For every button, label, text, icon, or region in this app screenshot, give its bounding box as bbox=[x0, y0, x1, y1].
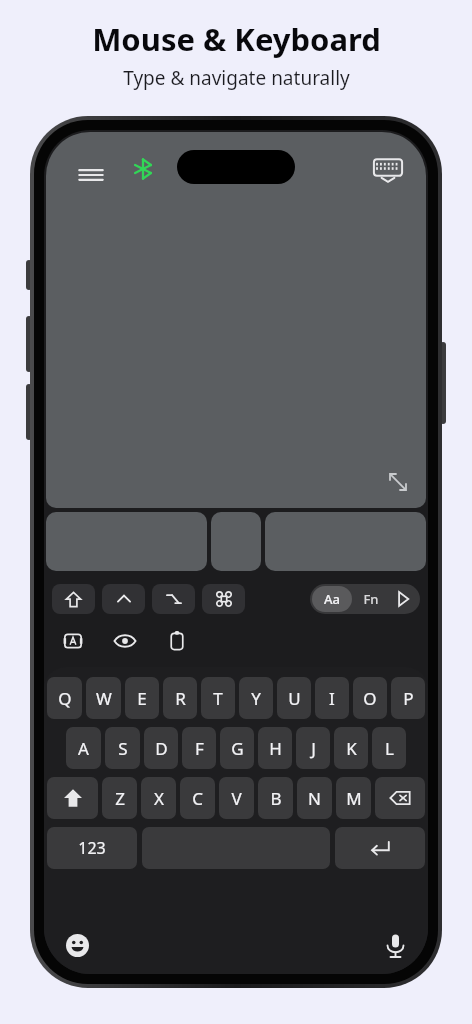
staticText: C bbox=[192, 787, 203, 810]
staticText: J bbox=[311, 737, 316, 760]
button[interactable]: Backspace bbox=[375, 777, 425, 819]
staticText: U bbox=[288, 687, 301, 710]
button[interactable]: Emoji bbox=[60, 928, 94, 962]
button[interactable] bbox=[152, 584, 195, 614]
staticText: F bbox=[195, 737, 204, 760]
staticText: K bbox=[346, 737, 357, 760]
staticText: Mouse & Keyboard bbox=[92, 18, 381, 60]
button[interactable]: V bbox=[219, 777, 254, 819]
staticText: R bbox=[175, 687, 186, 710]
button[interactable]: Aa bbox=[312, 586, 352, 612]
staticText: Q bbox=[58, 687, 72, 710]
button[interactable]: U bbox=[277, 677, 311, 719]
button[interactable]: Clipboard bbox=[162, 627, 192, 655]
staticText: Aa bbox=[324, 590, 340, 608]
button[interactable]: D bbox=[144, 727, 178, 769]
button[interactable]: More bbox=[388, 586, 418, 612]
staticText: I bbox=[329, 687, 335, 710]
button[interactable]: Hide keyboard bbox=[372, 156, 404, 188]
staticText: Type & navigate naturally bbox=[123, 65, 350, 91]
staticText: M bbox=[346, 787, 362, 810]
button[interactable]: Y bbox=[239, 677, 273, 719]
staticText: D bbox=[155, 737, 168, 760]
button[interactable]: T bbox=[201, 677, 235, 719]
button[interactable]: B bbox=[258, 777, 293, 819]
staticText: A bbox=[78, 737, 89, 760]
button[interactable]: G bbox=[220, 727, 254, 769]
button[interactable]: Return bbox=[335, 827, 425, 869]
button[interactable]: M bbox=[336, 777, 371, 819]
button[interactable]: C bbox=[180, 777, 215, 819]
staticText: 123 bbox=[78, 837, 106, 859]
button[interactable]: Q bbox=[47, 677, 82, 719]
button[interactable]: N bbox=[297, 777, 332, 819]
staticText: T bbox=[213, 687, 223, 710]
button[interactable] bbox=[202, 584, 245, 614]
button[interactable]: W bbox=[86, 677, 121, 719]
staticText: O bbox=[363, 687, 377, 710]
button[interactable]: Right click bbox=[265, 512, 426, 571]
button[interactable]: Select text bbox=[58, 627, 88, 655]
button[interactable]: E bbox=[125, 677, 159, 719]
button[interactable]: O bbox=[353, 677, 387, 719]
button[interactable]: P bbox=[391, 677, 425, 719]
staticText: Y bbox=[251, 687, 261, 710]
staticText: N bbox=[308, 787, 321, 810]
staticText: V bbox=[231, 787, 242, 810]
staticText: E bbox=[137, 687, 147, 710]
button[interactable]: R bbox=[163, 677, 197, 719]
button[interactable] bbox=[102, 584, 145, 614]
button[interactable]: X bbox=[141, 777, 176, 819]
button[interactable]: Dictate bbox=[378, 928, 412, 962]
staticText: P bbox=[403, 687, 414, 710]
button[interactable]: Z bbox=[102, 777, 137, 819]
staticText: H bbox=[269, 737, 282, 760]
staticText: L bbox=[385, 737, 394, 760]
button[interactable] bbox=[52, 584, 95, 614]
button[interactable]: Middle click bbox=[211, 512, 261, 571]
button[interactable]: Menu bbox=[76, 160, 106, 190]
staticText: S bbox=[118, 737, 128, 760]
staticText: Fn bbox=[363, 590, 379, 608]
button[interactable]: 123 bbox=[47, 827, 137, 869]
button[interactable]: Left click bbox=[46, 512, 207, 571]
button[interactable]: I bbox=[315, 677, 349, 719]
button[interactable]: F bbox=[182, 727, 216, 769]
button[interactable]: J bbox=[296, 727, 330, 769]
button[interactable]: Menu bbox=[46, 132, 426, 508]
button[interactable]: S bbox=[105, 727, 140, 769]
button[interactable]: Fn bbox=[354, 586, 388, 612]
button[interactable]: A bbox=[66, 727, 101, 769]
button[interactable]: Preview bbox=[110, 627, 140, 655]
staticText: G bbox=[231, 737, 244, 760]
button[interactable]: Shift bbox=[47, 777, 98, 819]
button[interactable]: L bbox=[372, 727, 406, 769]
staticText: B bbox=[270, 787, 282, 810]
button[interactable]: H bbox=[258, 727, 292, 769]
button[interactable]: K bbox=[334, 727, 368, 769]
staticText: X bbox=[154, 787, 164, 810]
staticText: Z bbox=[115, 787, 125, 810]
staticText: W bbox=[96, 687, 112, 710]
